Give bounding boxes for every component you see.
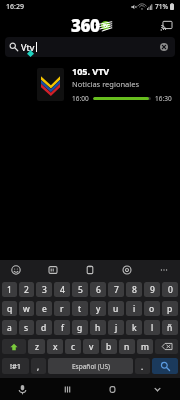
staticText: !#1 [10,361,22,371]
staticText: 360 [71,14,100,37]
button[interactable]: , [31,358,46,374]
button[interactable]: s [19,320,34,335]
button[interactable]: z [28,339,45,354]
staticText: m [141,341,149,353]
button[interactable]: h [90,320,106,335]
button[interactable]: Home [90,378,135,400]
button[interactable]: 7 [108,282,124,297]
button[interactable]: Shift [2,339,26,354]
staticText: 6 [96,284,101,296]
button[interactable]: Search [152,358,178,374]
staticText: n [124,341,130,353]
button[interactable]: Clear [158,41,170,53]
staticText: ñ [167,322,173,334]
button[interactable]: Hide keyboard [135,378,180,400]
staticText: z [35,341,39,353]
button[interactable]: 3 [36,282,52,297]
button[interactable]: y [90,301,106,316]
button[interactable]: i [126,301,142,316]
button[interactable]: o [144,301,160,316]
button[interactable]: n [119,339,135,354]
staticText: p [167,303,173,315]
button[interactable]: m [137,339,153,354]
staticText: s [24,322,29,334]
staticText: 71% [155,2,168,11]
button[interactable]: Cast [158,17,174,33]
staticText: . [141,361,144,372]
button[interactable]: x [47,339,63,354]
staticText: , [37,361,40,372]
button[interactable]: b [101,339,117,354]
button[interactable]: a [2,320,17,335]
button[interactable]: k [126,320,142,335]
button[interactable]: g [72,320,88,335]
staticText: h [95,322,101,334]
button[interactable]: r [54,301,70,316]
button[interactable]: 0 [162,282,178,297]
button[interactable]: l [144,320,160,335]
staticText: 3 [42,284,47,296]
button[interactable]: GIF [45,262,61,278]
button[interactable]: u [108,301,124,316]
staticText: b [106,341,112,353]
button[interactable]: e [36,301,52,316]
button[interactable]: p [162,301,178,316]
staticText: 16:29 [6,2,24,12]
button[interactable]: Clipboard [82,262,98,278]
button[interactable]: q [2,301,17,316]
button[interactable]: !#1 [2,358,29,374]
staticText: t [78,303,82,315]
button[interactable]: v [83,339,99,354]
staticText: o [149,303,155,315]
button[interactable]: Backspace [155,339,178,354]
button[interactable]: ñ [162,320,178,335]
button[interactable]: Recents [45,378,90,400]
button[interactable]: Settings [119,262,135,278]
button[interactable]: Vtv [5,37,175,57]
button[interactable]: 9 [144,282,160,297]
button[interactable]: 8 [126,282,142,297]
staticText: 8 [132,284,137,296]
staticText: f [61,322,64,334]
staticText: 1 [7,284,12,296]
staticText: a [7,322,12,334]
button[interactable]: 5 [72,282,88,297]
staticText: 16:30 [155,94,172,103]
button[interactable]: 4 [54,282,70,297]
button[interactable]: 1 [2,282,17,297]
staticText: j [115,322,118,334]
staticText: l [151,322,154,334]
staticText: w [23,303,30,315]
staticText: u [113,303,119,315]
button[interactable]: d [36,320,52,335]
staticText: Español (US) [72,362,110,371]
staticText: TV [103,23,108,28]
staticText: e [42,303,47,315]
button[interactable]: 6 [90,282,106,297]
staticText: 7 [114,284,119,296]
button[interactable]: Voice input [0,378,45,400]
staticText: 2 [24,284,29,296]
staticText: 105. VTV [72,65,110,77]
button[interactable]: Español (US) [48,358,133,374]
button[interactable]: 105. VTV [0,63,180,105]
staticText: Noticias regionales [72,79,140,89]
staticText: 4 [60,284,65,296]
staticText: 16:00 [72,94,89,103]
button[interactable]: w [19,301,34,316]
staticText: 5 [78,284,83,296]
button[interactable]: t [72,301,88,316]
staticText: y [96,303,101,315]
staticText: c [71,341,76,353]
staticText: r [60,303,64,315]
staticText: Vtv [21,41,35,53]
button[interactable]: Emoji [8,262,24,278]
staticText: k [132,322,137,334]
button[interactable]: 2 [19,282,34,297]
staticText: q [7,303,13,315]
button[interactable]: More options [156,262,172,278]
button[interactable]: j [108,320,124,335]
button[interactable]: f [54,320,70,335]
button[interactable]: c [65,339,81,354]
button[interactable]: . [135,358,150,374]
